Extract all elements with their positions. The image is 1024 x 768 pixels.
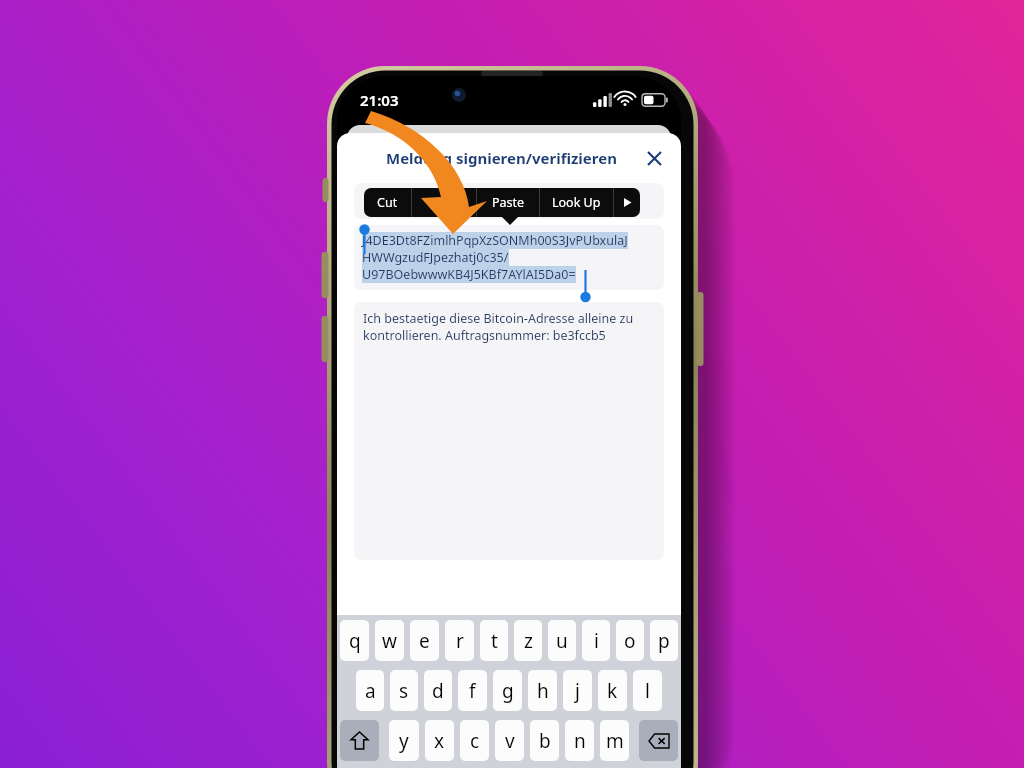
button[interactable]: j <box>563 670 592 711</box>
staticText: h <box>537 678 549 704</box>
button[interactable]: d <box>424 670 452 711</box>
staticText: s <box>399 678 409 704</box>
button[interactable]: o <box>616 620 644 661</box>
staticText: y <box>399 728 409 754</box>
button[interactable]: n <box>565 720 594 761</box>
staticText: g <box>502 678 514 704</box>
button[interactable]: g <box>493 670 522 711</box>
button[interactable]: k <box>598 670 627 711</box>
staticText: t <box>491 628 498 654</box>
button[interactable]: v <box>495 720 524 761</box>
button[interactable]: r <box>445 620 474 661</box>
staticText: x <box>434 728 445 754</box>
button[interactable]: Paste <box>477 188 539 217</box>
staticText: w <box>382 628 397 654</box>
button[interactable]: Look Up <box>540 188 613 217</box>
staticText: f <box>469 678 476 704</box>
staticText: z <box>524 628 533 654</box>
staticText: u <box>556 628 568 654</box>
staticText: m <box>606 728 624 754</box>
staticText: 21:03 <box>360 90 399 110</box>
staticText: d <box>432 678 444 704</box>
button[interactable]: Shift <box>340 720 379 761</box>
staticText: Cut <box>377 194 398 211</box>
staticText: l <box>645 678 650 704</box>
staticText: j <box>575 678 580 704</box>
button[interactable]: e <box>410 620 439 661</box>
staticText: v <box>505 728 515 754</box>
button[interactable]: l <box>633 670 662 711</box>
button[interactable]: q <box>340 620 369 661</box>
button[interactable]: s <box>390 670 418 711</box>
staticText: Copy <box>429 194 459 211</box>
button[interactable]: p <box>650 620 678 661</box>
staticText: k <box>607 678 618 704</box>
button[interactable]: t <box>480 620 508 661</box>
button[interactable]: w <box>375 620 404 661</box>
button[interactable]: c <box>460 720 489 761</box>
button[interactable]: z <box>514 620 542 661</box>
button[interactable]: u <box>548 620 576 661</box>
button[interactable]: Copy <box>412 188 476 217</box>
button[interactable]: m <box>600 720 629 761</box>
staticText: r <box>456 628 464 654</box>
button[interactable]: More options <box>614 188 640 217</box>
staticText: c <box>470 728 480 754</box>
staticText: kontrollieren. Auftragsnummer: be3fccb5 <box>363 327 606 344</box>
staticText: p <box>658 628 670 654</box>
staticText: e <box>419 628 430 654</box>
button[interactable]: y <box>389 720 419 761</box>
button[interactable]: i <box>582 620 610 661</box>
staticText: n <box>574 728 586 754</box>
staticText: Meldung signieren/verifizieren <box>386 148 617 168</box>
button[interactable]: b <box>530 720 559 761</box>
button[interactable]: h <box>528 670 557 711</box>
button[interactable]: Cut <box>364 188 411 217</box>
staticText: i <box>594 628 599 654</box>
button[interactable]: x <box>425 720 454 761</box>
staticText: Paste <box>492 194 525 211</box>
staticText: Ich bestaetige diese Bitcoin-Adresse all… <box>363 310 634 327</box>
button[interactable]: a <box>356 670 384 711</box>
button[interactable]: Backspace <box>639 720 678 761</box>
staticText: HWWgzudFJpezhatj0c35/ <box>362 249 509 266</box>
button[interactable]: f <box>458 670 487 711</box>
staticText: U97BOebwwwKB4J5KBf7AYlAI5Da0= <box>362 266 576 283</box>
staticText: J4DE3Dt8FZimlhPqpXzSONMh00S3JvPUbxulaJ <box>362 232 628 249</box>
button[interactable]: Close <box>639 143 669 173</box>
staticText: q <box>349 628 361 654</box>
staticText: b <box>539 728 551 754</box>
staticText: a <box>365 678 376 704</box>
staticText: Look Up <box>552 194 601 211</box>
staticText: o <box>624 628 636 654</box>
